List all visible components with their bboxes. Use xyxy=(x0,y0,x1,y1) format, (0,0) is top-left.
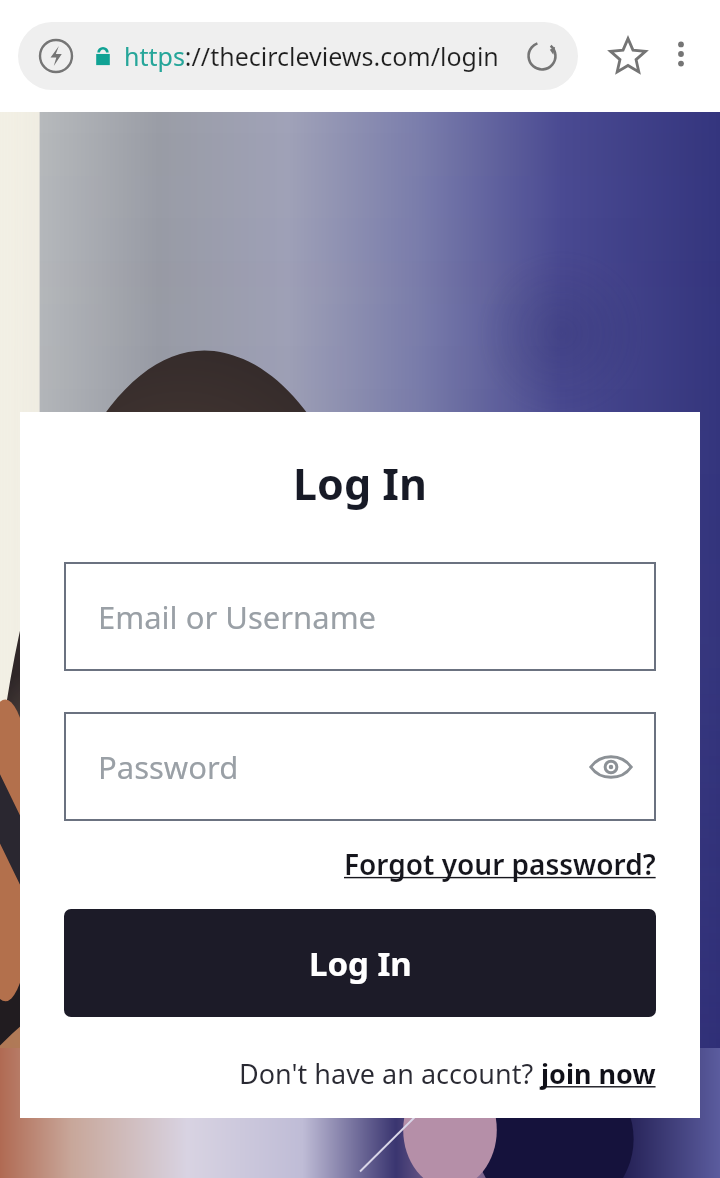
button[interactable]: Password xyxy=(64,712,656,821)
button[interactable]: Address bar xyxy=(18,22,578,90)
staticText: Don't have an account? xyxy=(239,1055,541,1092)
button[interactable]: Bookmark xyxy=(600,28,656,84)
button[interactable]: Log In xyxy=(64,909,656,1017)
button[interactable]: join now xyxy=(541,1055,656,1092)
button[interactable]: Show password xyxy=(580,736,642,798)
button[interactable]: Forgot your password? xyxy=(344,845,656,883)
staticText: Log In xyxy=(64,454,656,513)
button[interactable]: Reload xyxy=(514,28,570,84)
staticText: https://thecircleviews.com/login xyxy=(124,39,499,73)
staticText: join now xyxy=(541,1055,656,1092)
staticText: Forgot your password? xyxy=(344,845,656,883)
button[interactable]: Email or Username xyxy=(64,562,656,671)
staticText: Email or Username xyxy=(98,596,377,638)
staticText: Log In xyxy=(309,941,412,986)
staticText: Password xyxy=(98,746,239,788)
button[interactable]: More options xyxy=(655,28,707,80)
